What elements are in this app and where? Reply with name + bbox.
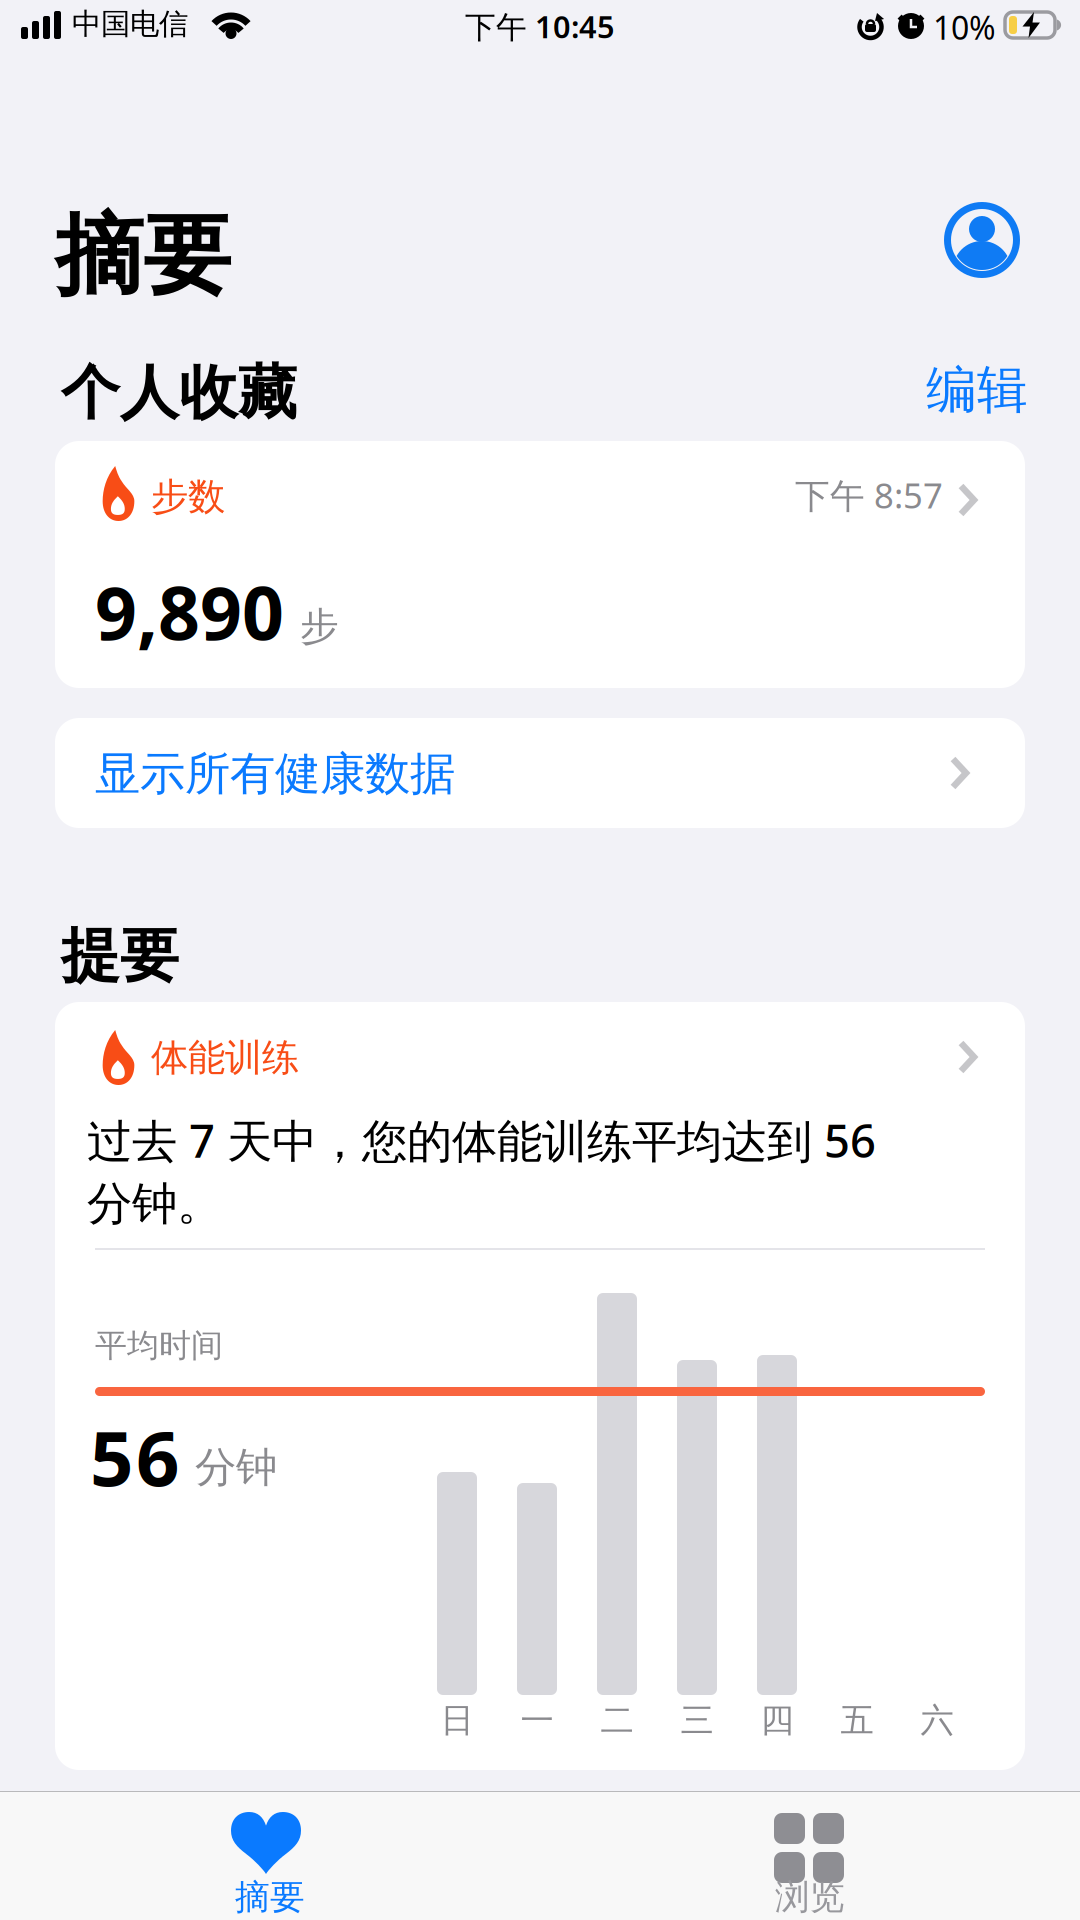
staticText: 中国电信 (72, 6, 188, 42)
staticText: 分钟。 (87, 1176, 222, 1232)
staticText: 二 (600, 1700, 633, 1741)
button[interactable]: 摘要 (0, 1792, 540, 1920)
button[interactable]: 体能训练 (55, 1002, 1025, 1770)
staticText: 步数 (151, 474, 225, 520)
staticText: 下午 10:45 (465, 6, 615, 47)
staticText: 个人收藏 (61, 357, 297, 429)
staticText: 一 (520, 1700, 553, 1741)
staticText: 下午 8:57 (795, 472, 943, 518)
staticText: 日 (440, 1700, 473, 1741)
staticText: 10% (933, 6, 996, 48)
staticText: 五 (840, 1700, 873, 1741)
staticText: 三 (680, 1700, 713, 1741)
staticText: 摘要 (55, 202, 231, 310)
button[interactable]: 浏览 (540, 1792, 1080, 1920)
staticText: 9,890 (95, 563, 284, 660)
staticText: 体能训练 (151, 1035, 299, 1081)
staticText: 摘要 (235, 1876, 305, 1919)
staticText: 提要 (61, 920, 179, 992)
staticText: 分钟 (195, 1442, 277, 1493)
button[interactable]: 编辑 (926, 359, 1028, 421)
staticText: 步 (300, 603, 339, 650)
staticText: 过去 7 天中，您的体能训练平均达到 56 (87, 1110, 876, 1170)
staticText: 浏览 (775, 1876, 845, 1919)
button[interactable]: 步数 (55, 441, 1025, 688)
staticText: 六 (920, 1700, 953, 1741)
staticText: 56 (90, 1406, 179, 1507)
staticText: 四 (760, 1700, 793, 1741)
staticText: 显示所有健康数据 (95, 746, 455, 802)
staticText: 平均时间 (95, 1326, 223, 1365)
staticText: 编辑 (926, 359, 1028, 421)
button[interactable]: 个人资料 (944, 202, 1020, 278)
button[interactable]: 显示所有健康数据 (55, 718, 1025, 828)
